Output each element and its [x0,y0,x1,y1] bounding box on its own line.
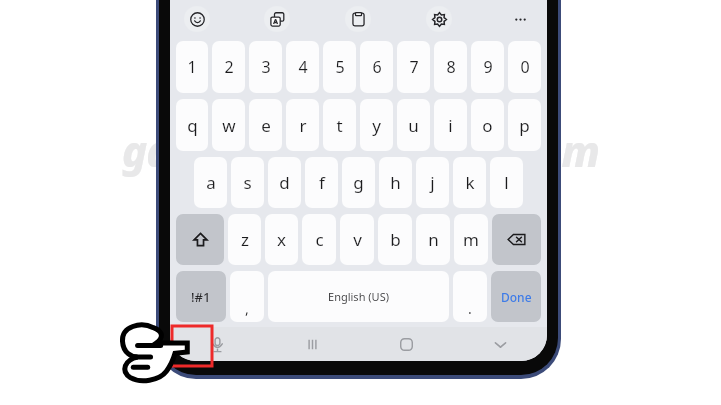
button[interactable]: v [340,214,374,265]
button[interactable]: x [265,214,298,265]
button[interactable]: n [416,214,450,265]
staticText: g [353,171,364,194]
staticText: w [222,114,236,137]
button[interactable]: Clipboard [345,6,371,32]
button[interactable]: 8 [434,41,467,93]
button[interactable]: . [453,271,487,322]
staticText: 8 [446,56,456,78]
staticText: b [390,228,401,251]
staticText: 1 [187,56,197,78]
button[interactable]: z [228,214,261,265]
staticText: k [465,171,475,194]
staticText: h [390,171,401,194]
staticText: s [243,171,252,194]
button[interactable]: English (US) [268,271,449,322]
staticText: English (US) [328,289,389,304]
staticText: p [519,114,530,137]
staticText: r [299,114,307,137]
button[interactable]: u [397,99,430,151]
button[interactable]: k [453,157,486,208]
button[interactable]: h [379,157,412,208]
button[interactable]: b [378,214,412,265]
staticText: i [448,114,453,137]
staticText: n [428,228,439,251]
button[interactable]: Keyboard settings [426,6,452,32]
button[interactable]: q [176,99,208,151]
staticText: y [372,114,381,137]
staticText: . [468,299,472,318]
button[interactable]: t [323,99,356,151]
button[interactable]: Emoji [184,6,210,32]
staticText: t [336,114,343,137]
staticText: z [241,228,249,251]
staticText: Done [501,289,532,305]
button[interactable]: s [231,157,264,208]
button[interactable]: Hide keyboard [453,327,547,361]
staticText: v [353,228,362,251]
button[interactable]: 7 [397,41,430,93]
staticText: 2 [224,56,234,78]
button[interactable]: p [508,99,541,151]
staticText: 9 [483,56,493,78]
button[interactable]: g [342,157,375,208]
staticText: e [261,114,271,137]
button[interactable]: 0 [508,41,541,93]
button[interactable]: l [490,157,523,208]
staticText: x [277,228,286,251]
staticText: c [315,228,324,251]
button[interactable]: r [286,99,319,151]
staticText: 0 [520,56,530,78]
staticText: l [504,171,509,194]
button[interactable]: Voice input [170,327,265,361]
button[interactable]: Done [491,271,541,322]
staticText: 4 [298,56,308,78]
button[interactable]: 6 [360,41,393,93]
staticText: 3 [261,56,271,78]
button[interactable]: Translate [264,6,290,32]
button[interactable]: 4 [286,41,319,93]
button[interactable]: e [249,99,282,151]
button[interactable]: y [360,99,393,151]
staticText: galaxys25userguide.com [122,122,599,179]
staticText: a [206,171,216,194]
button[interactable]: Recents [265,327,359,361]
button[interactable]: 2 [212,41,245,93]
button[interactable]: c [302,214,336,265]
button[interactable]: m [454,214,488,265]
button[interactable]: j [416,157,449,208]
button[interactable]: d [268,157,301,208]
staticText: 6 [372,56,382,78]
staticText: d [279,171,290,194]
button[interactable]: Backspace [492,214,541,265]
staticText: u [408,114,419,137]
staticText: !#1 [191,288,211,306]
button[interactable]: o [471,99,504,151]
button[interactable]: Home [359,327,453,361]
button[interactable]: a [194,157,227,208]
button[interactable]: f [305,157,338,208]
button[interactable]: More options [507,6,533,32]
staticText: 7 [409,56,419,78]
staticText: q [187,114,198,137]
staticText: j [430,171,435,194]
staticText: , [245,299,249,318]
button[interactable]: w [212,99,245,151]
staticText: m [463,228,479,251]
staticText: 5 [335,56,345,78]
button[interactable]: !#1 [176,271,226,322]
button[interactable]: 5 [323,41,356,93]
button[interactable]: Shift [176,214,224,265]
button[interactable]: i [434,99,467,151]
button[interactable]: 1 [176,41,208,93]
staticText: o [482,114,493,137]
staticText: f [319,171,325,194]
button[interactable]: 9 [471,41,504,93]
button[interactable]: 3 [249,41,282,93]
button[interactable]: , [230,271,264,322]
